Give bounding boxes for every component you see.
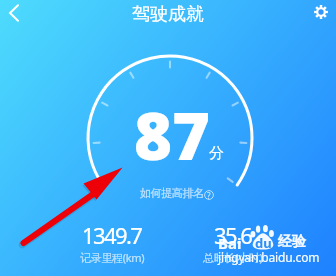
staticText: 如何提高排名 bbox=[140, 186, 204, 200]
button[interactable]: Back bbox=[1, 0, 27, 26]
staticText: ? bbox=[207, 190, 211, 200]
staticText: 分 bbox=[209, 144, 224, 163]
staticText: 记录里程(km) bbox=[80, 250, 145, 265]
staticText: 总时长(小时) bbox=[203, 250, 263, 265]
staticText: 1349.7 bbox=[82, 220, 142, 250]
staticText: du bbox=[255, 234, 272, 252]
staticText: 87 bbox=[134, 91, 211, 180]
staticText: jingyan.baidu.com bbox=[218, 249, 320, 265]
staticText: 35.6 bbox=[214, 220, 252, 250]
button[interactable]: Settings bbox=[308, 0, 334, 25]
staticText: Bai bbox=[218, 233, 242, 253]
staticText: 经验 bbox=[278, 233, 306, 251]
button[interactable]: 如何提高排名 bbox=[140, 186, 214, 200]
staticText: 驾驶成就 bbox=[132, 3, 204, 26]
